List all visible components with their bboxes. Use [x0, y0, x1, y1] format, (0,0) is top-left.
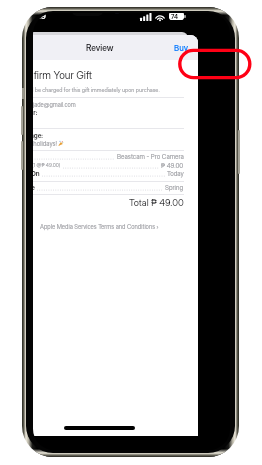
button[interactable]: Apple Media Services Terms and Condition… [33, 220, 198, 232]
staticText: Confirm Your Gift [33, 69, 92, 81]
staticText: (1 @₱ 49.00) [33, 162, 61, 168]
staticText: Buy [174, 43, 189, 53]
staticText: Review [86, 43, 114, 53]
staticText: Apple Media Services Terms and Condition… [40, 223, 159, 230]
staticText: Sender: [33, 109, 38, 117]
staticText: Today [167, 170, 184, 178]
staticText: Spring [165, 184, 184, 192]
staticText: You will be charged for this gift immedi… [33, 87, 160, 94]
staticText: 10:19 [33, 13, 46, 21]
button[interactable]: Buy [165, 35, 198, 60]
staticText: 74 [171, 13, 178, 20]
staticText: Theme [33, 184, 35, 192]
staticText: ₱ 49.00 [161, 162, 184, 170]
staticText: Beastcam - Pro Camera [117, 153, 184, 161]
staticText: jade@gmail.com [33, 101, 76, 108]
staticText: Happy holidays! [33, 140, 57, 148]
staticText: Send On [33, 170, 40, 178]
staticText: Total ₱ 49.00 [129, 197, 184, 208]
staticText: Message: [33, 132, 43, 140]
